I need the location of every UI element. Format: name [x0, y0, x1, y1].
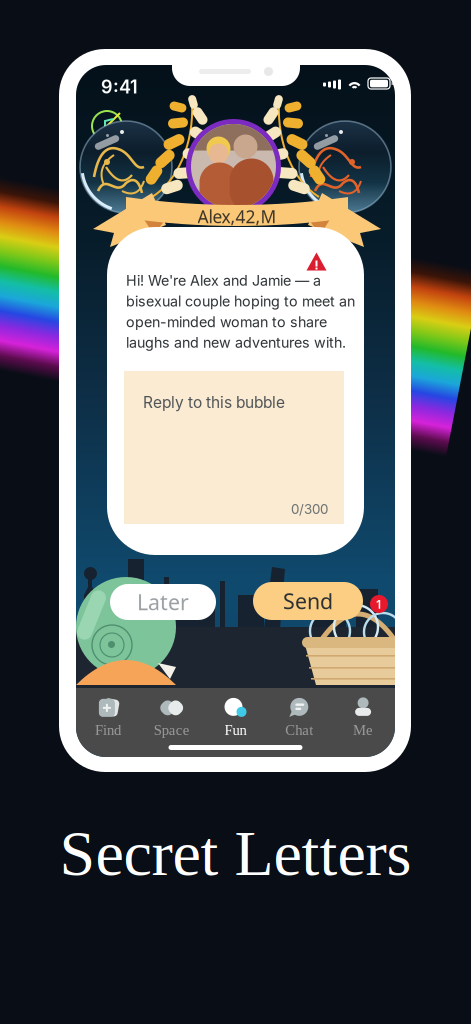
staticText: laughs and new adventures with.	[126, 334, 346, 351]
button[interactable]: Later	[110, 584, 216, 620]
staticText: 9:41	[101, 76, 138, 98]
staticText: Reply to this bubble	[143, 393, 285, 412]
button[interactable]: Me	[331, 695, 395, 739]
staticText: Fun	[224, 722, 246, 738]
button[interactable]: Chat	[267, 695, 331, 739]
staticText: Find	[95, 722, 121, 738]
staticText: Later	[137, 588, 189, 616]
staticText: Hi! We're Alex and Jamie — a	[126, 272, 321, 289]
staticText: Send	[283, 587, 333, 615]
staticText: Chat	[285, 722, 313, 738]
button[interactable]: Space	[140, 695, 204, 739]
staticText: Alex,42,M	[197, 205, 276, 228]
staticText: 0/300	[291, 501, 328, 517]
staticText: bisexual couple hoping to meet an	[126, 293, 355, 310]
staticText: Secret Letters	[59, 818, 411, 889]
staticText: open-minded woman to share	[126, 313, 327, 331]
staticText: Space	[154, 722, 190, 738]
staticText: Me	[353, 722, 373, 738]
button[interactable]: Fun	[204, 695, 267, 739]
button[interactable]: Send	[253, 582, 363, 620]
staticText: 1	[375, 596, 382, 612]
button[interactable]: Find	[76, 695, 140, 739]
button[interactable]: Mute music	[90, 109, 124, 143]
